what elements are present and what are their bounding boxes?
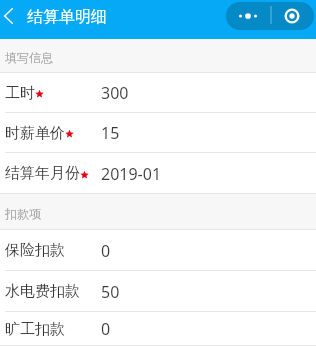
staticText: 时薪单价 — [5, 124, 65, 143]
button[interactable]: 水电费扣款 — [0, 271, 316, 312]
button[interactable]: 旷工扣款 — [0, 312, 316, 346]
staticText: 水电费扣款 — [5, 282, 80, 301]
button[interactable]: Back — [0, 0, 17, 32]
button[interactable]: 工时 — [0, 73, 316, 113]
button[interactable]: More options — [226, 2, 270, 30]
button[interactable]: Close — [270, 2, 314, 30]
staticText: 保险扣款 — [5, 241, 65, 260]
staticText: 300 — [101, 82, 129, 104]
staticText: 结算年月份 — [5, 164, 80, 183]
staticText: 填写信息 — [5, 50, 53, 65]
button[interactable]: 保险扣款 — [0, 230, 316, 271]
staticText: 工时 — [5, 84, 35, 103]
staticText: 0 — [101, 240, 111, 262]
staticText: 结算单明细 — [27, 7, 107, 27]
staticText: 0 — [101, 318, 111, 340]
button[interactable]: 时薪单价 — [0, 113, 316, 153]
staticText: 50 — [101, 281, 120, 303]
staticText: 扣款项 — [5, 206, 41, 221]
button[interactable]: 结算年月份 — [0, 153, 316, 194]
staticText: 旷工扣款 — [5, 320, 65, 339]
staticText: 15 — [101, 122, 120, 144]
staticText: 2019-01 — [101, 163, 162, 185]
